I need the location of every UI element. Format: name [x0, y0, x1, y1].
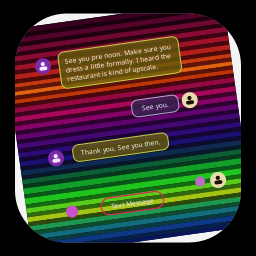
staticText: See you. — [144, 106, 171, 114]
staticText: Thank you. See you then. — [78, 142, 158, 150]
staticText: Text Message — [100, 199, 143, 207]
staticText: See you pre noon. Make sure you dress a … — [74, 49, 181, 75]
